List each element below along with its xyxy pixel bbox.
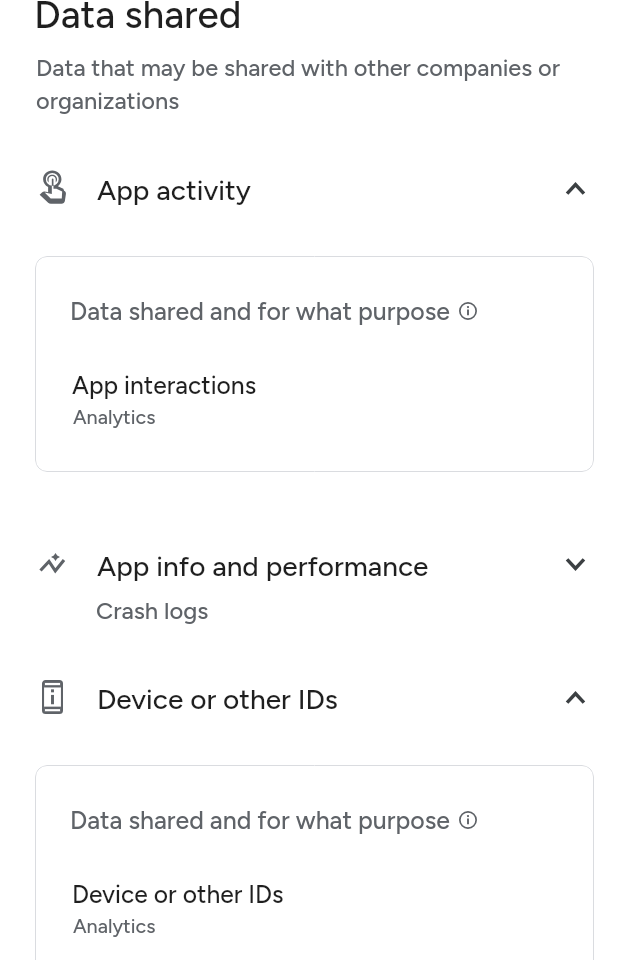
staticText: Device or other IDs bbox=[72, 880, 284, 910]
staticText: Device or other IDs bbox=[97, 682, 338, 716]
other: More information bbox=[459, 811, 477, 829]
staticText: Data shared bbox=[34, 0, 242, 37]
staticText: Data shared and for what purpose bbox=[70, 805, 450, 835]
staticText: Crash logs bbox=[96, 596, 209, 625]
button[interactable]: App info and performance bbox=[0, 539, 617, 629]
button[interactable]: Device or other IDs bbox=[0, 672, 617, 726]
staticText: Analytics bbox=[73, 405, 156, 429]
other: Collapse section bbox=[561, 174, 590, 203]
staticText: Data shared and for what purpose bbox=[70, 296, 450, 326]
other: More information bbox=[459, 302, 477, 320]
button[interactable]: App activity bbox=[0, 163, 617, 217]
staticText: App activity bbox=[97, 173, 251, 207]
staticText: App info and performance bbox=[97, 549, 429, 583]
staticText: App interactions bbox=[72, 371, 257, 401]
button[interactable]: Data shared and for what purpose bbox=[35, 256, 594, 472]
staticText: Data that may be shared with other compa… bbox=[36, 54, 576, 115]
other: Collapse section bbox=[561, 683, 590, 712]
staticText: Analytics bbox=[73, 914, 156, 938]
other: Expand section bbox=[561, 550, 590, 579]
button[interactable]: Data shared and for what purpose bbox=[35, 765, 594, 960]
